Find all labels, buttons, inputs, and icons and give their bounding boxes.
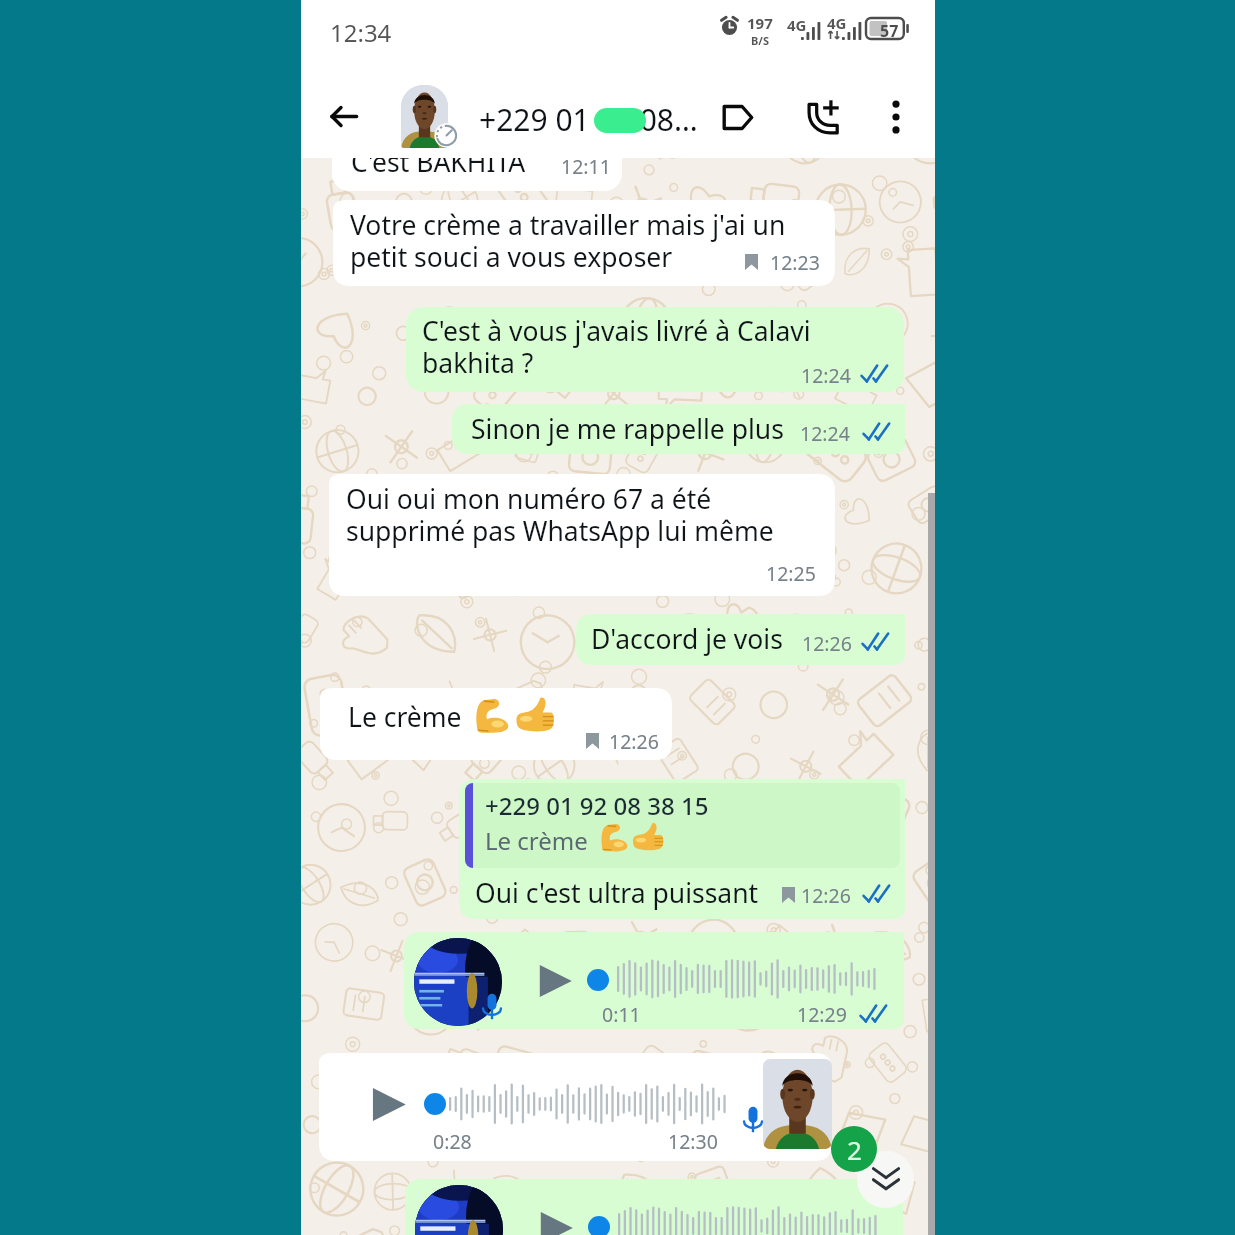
button[interactable]: More options <box>872 93 920 141</box>
staticText: 12:34 <box>330 16 392 49</box>
staticText: 4G <box>787 15 807 35</box>
staticText: C'est à vous j'avais livré à Calavi <box>422 313 811 349</box>
staticText: Votre crème a travailler mais j'ai un <box>350 207 786 243</box>
button[interactable]: Back <box>321 93 367 139</box>
staticText: 12:11 <box>561 153 611 180</box>
staticText: D'accord je vois <box>591 621 783 657</box>
staticText: +229 01 92 08… <box>479 99 698 140</box>
staticText: 197 <box>747 13 773 33</box>
staticText: 57 <box>880 20 899 42</box>
staticText: 12:30 <box>668 1128 718 1155</box>
button[interactable]: Add call <box>798 93 846 141</box>
staticText: 12:26 <box>801 882 851 909</box>
staticText: Sinon je me rappelle plus <box>471 411 784 447</box>
staticText: bakhita ? <box>422 345 534 381</box>
staticText: +229 01 92 08 38 15 <box>485 789 709 822</box>
staticText: B/S <box>751 33 769 48</box>
staticText: 12:29 <box>797 1001 847 1028</box>
staticText: 0:28 <box>433 1128 472 1155</box>
staticText: 12:26 <box>609 728 659 755</box>
staticText: 4G <box>827 13 847 33</box>
staticText: 12:24 <box>801 362 851 389</box>
staticText: Oui c'est ultra puissant <box>475 875 759 911</box>
staticText: 12:24 <box>800 420 850 447</box>
staticText: petit souci a vous exposer <box>350 239 673 275</box>
button[interactable]: Label <box>713 93 761 141</box>
staticText: Le crème <box>348 699 462 735</box>
staticText: 12:25 <box>766 560 816 587</box>
staticText: Le crème <box>485 824 588 857</box>
button[interactable]: Scroll to bottom <box>857 1151 914 1208</box>
staticText: Oui oui mon numéro 67 a été <box>346 481 712 517</box>
staticText: 2 <box>847 1132 862 1167</box>
staticText: 12:23 <box>770 249 820 276</box>
staticText: 12:26 <box>802 630 852 657</box>
staticText: supprimé pas WhatsApp lui même <box>346 513 774 549</box>
staticText: C'est BAKHITA <box>351 144 526 180</box>
staticText: 0:11 <box>602 1001 641 1028</box>
